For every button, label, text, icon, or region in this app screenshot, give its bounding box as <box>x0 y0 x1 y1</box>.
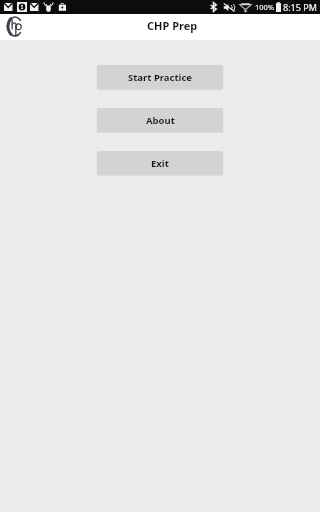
button[interactable]: CHP Prep app icon <box>7 16 24 37</box>
staticText: Exit <box>151 157 169 170</box>
button[interactable]: Exit <box>97 151 223 175</box>
button[interactable]: Start Practice <box>97 65 223 89</box>
button[interactable]: About <box>97 108 223 132</box>
staticText: 100% <box>255 2 275 12</box>
staticText: CHP Prep <box>147 18 198 33</box>
staticText: Start Practice <box>128 71 192 84</box>
staticText: About <box>146 114 175 127</box>
staticText: 8:15 PM <box>283 1 317 13</box>
